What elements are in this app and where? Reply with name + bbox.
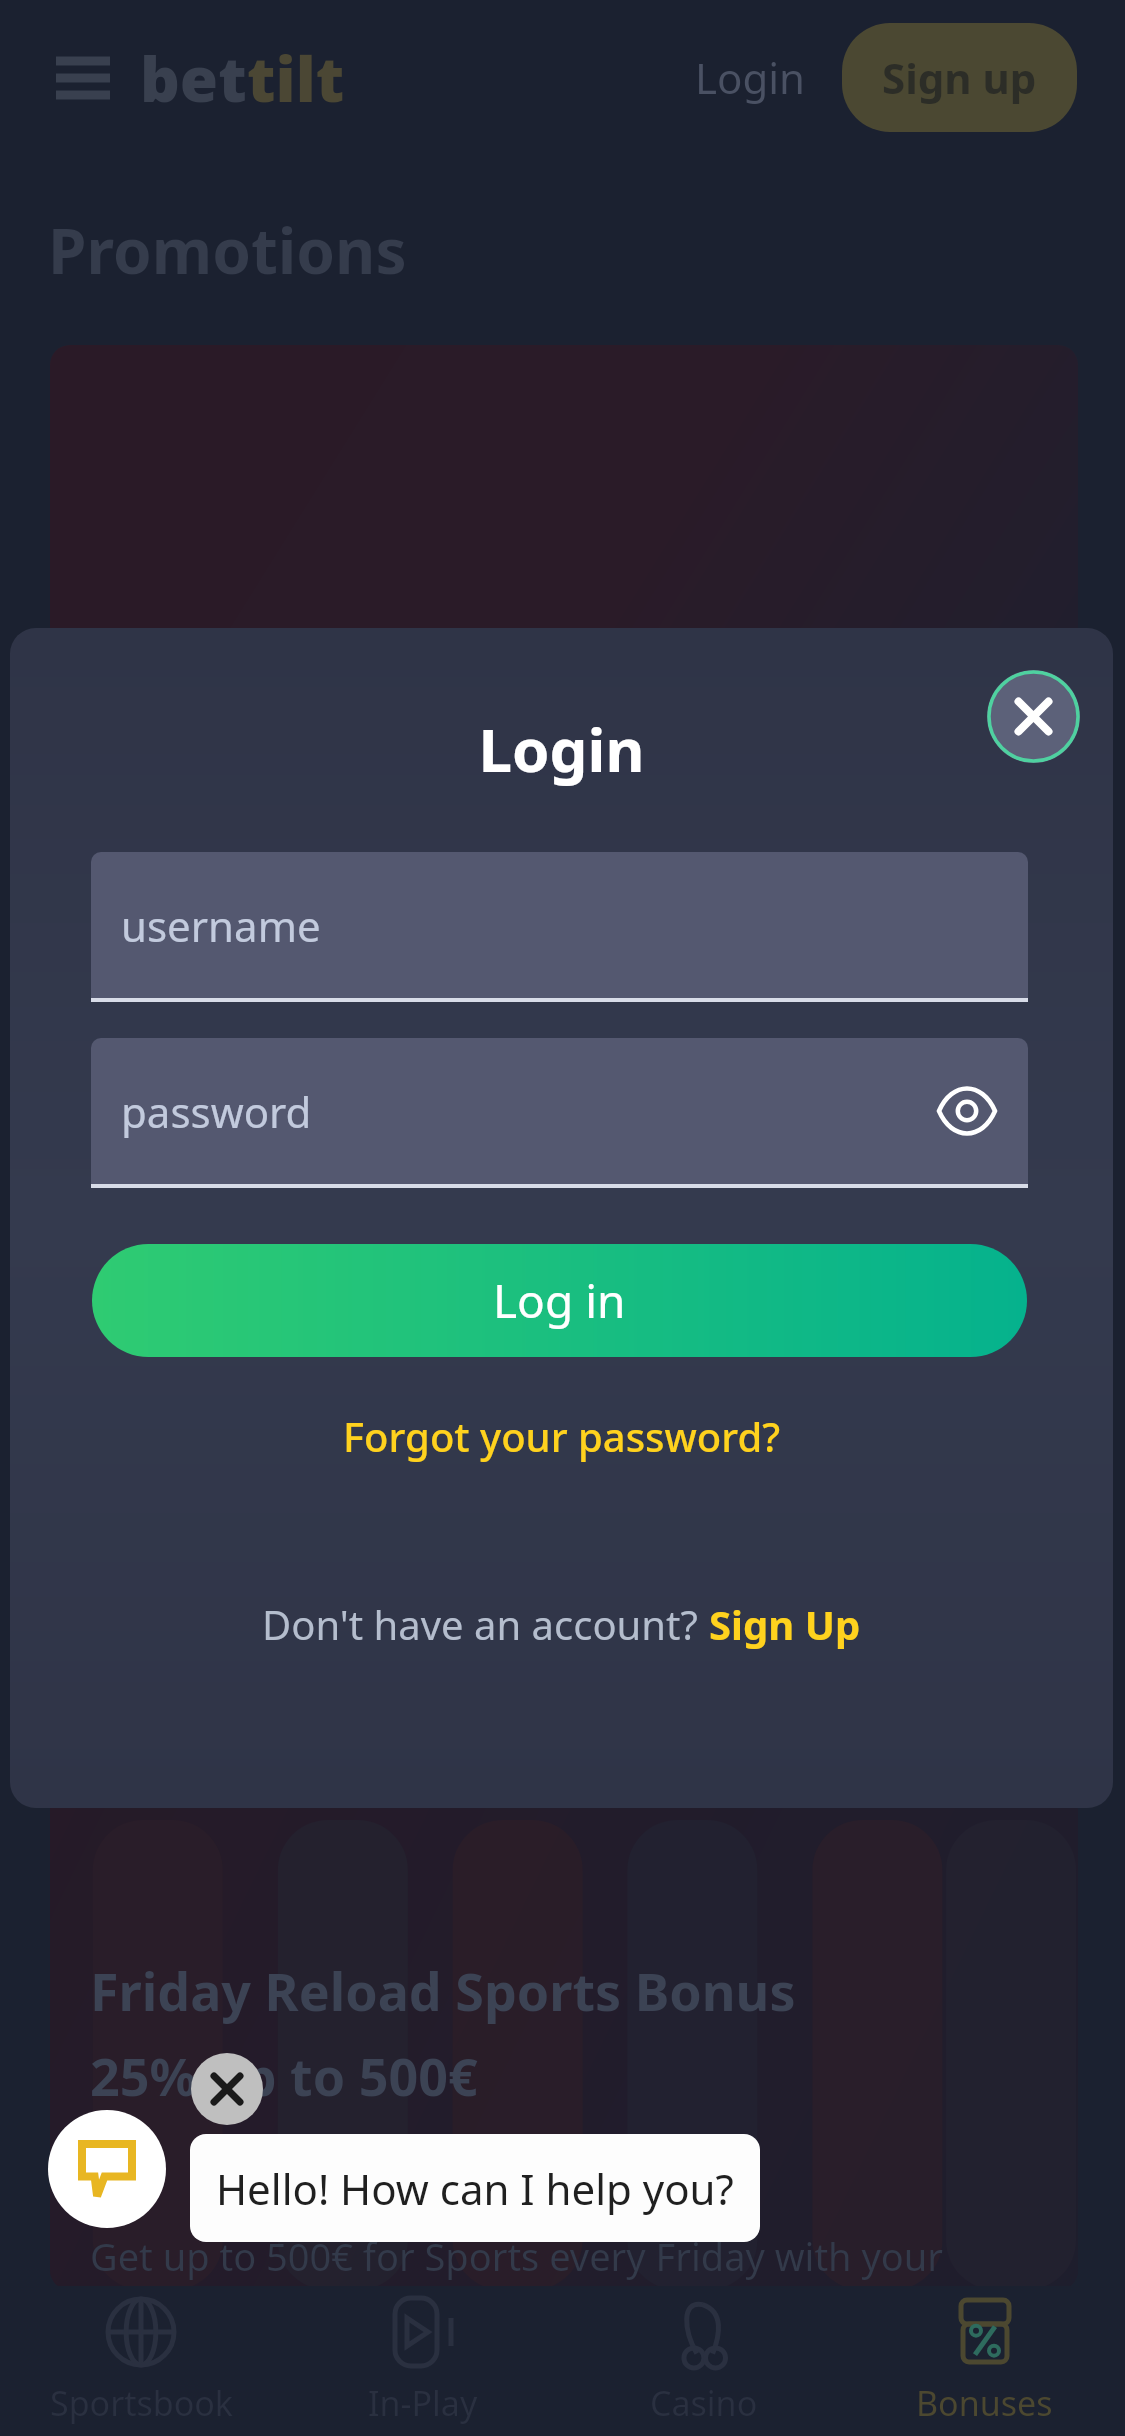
button[interactable]: Log in	[92, 1244, 1027, 1357]
button[interactable]: Hello! How can I help you?	[190, 2134, 760, 2242]
staticText: Log in	[493, 1269, 626, 1332]
button[interactable]: Sign Up	[709, 1597, 861, 1651]
staticText: password	[121, 1083, 312, 1140]
staticText: Bonuses	[916, 2380, 1053, 2426]
button[interactable]: In-Play	[282, 2286, 563, 2436]
staticText: Casino	[650, 2380, 758, 2426]
staticText: Sign up	[882, 49, 1037, 106]
button[interactable]: password	[91, 1038, 1028, 1184]
staticText: 25% up to 500€	[90, 2040, 478, 2111]
staticText: Don't have an account?	[262, 1597, 709, 1651]
button[interactable]: Casino	[563, 2286, 844, 2436]
staticText: Forgot your password?	[343, 1409, 781, 1463]
staticText: Friday Reload Sports Bonus	[90, 1955, 796, 2026]
button[interactable]: Sign up	[842, 23, 1077, 132]
staticText: Sign Up	[709, 1597, 861, 1651]
staticText: Sportsbook	[50, 2380, 233, 2426]
button[interactable]: Menu	[48, 43, 118, 113]
staticText: Promotions	[48, 208, 407, 292]
staticText: Hello! How can I help you?	[216, 2160, 734, 2217]
button[interactable]: Close chat	[191, 2053, 263, 2125]
button[interactable]: Bonuses	[844, 2286, 1125, 2436]
button[interactable]: Login	[685, 35, 816, 120]
button[interactable]: Live chat	[48, 2110, 166, 2228]
button[interactable]: Close	[987, 670, 1080, 763]
staticText: username	[121, 897, 321, 954]
staticText: tilt	[247, 36, 345, 120]
button[interactable]: Forgot your password?	[335, 1401, 789, 1471]
staticText: Login	[695, 49, 806, 106]
button[interactable]: Show password	[928, 1072, 1006, 1150]
button[interactable]: username	[91, 852, 1028, 998]
staticText: Login	[10, 708, 1113, 790]
staticText: In-Play	[368, 2380, 478, 2426]
button[interactable]: Sportsbook	[0, 2286, 282, 2436]
staticText: Get up to 500€ for Sports every Friday w…	[90, 2230, 944, 2282]
staticText: bet	[140, 36, 247, 120]
